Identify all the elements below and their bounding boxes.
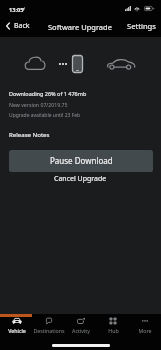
button[interactable]: Vehicle (0, 317, 33, 350)
button[interactable]: Destinations (33, 317, 65, 350)
staticText: Software Upgrade (48, 22, 112, 32)
button[interactable]: Back (2, 16, 36, 36)
staticText: Release Notes (9, 130, 50, 138)
button[interactable]: More (129, 317, 161, 350)
button[interactable]: Cancel Upgrade (0, 172, 161, 185)
staticText: Upgrade available until 23 Feb (9, 112, 81, 119)
button[interactable]: Release Notes (9, 130, 50, 138)
button[interactable]: Activity (65, 317, 97, 350)
staticText: More (138, 327, 152, 334)
staticText: Vehicle (8, 327, 26, 334)
staticText: 13:05 (9, 6, 24, 14)
staticText: Pause Download (50, 155, 113, 166)
staticText: Cancel Upgrade (54, 174, 107, 184)
button[interactable]: Settings (121, 16, 161, 36)
staticText: Activity (72, 327, 90, 334)
staticText: Destinations (33, 327, 65, 334)
staticText: Downloading 26% of 1 476mb (9, 90, 87, 97)
staticText: Hub (108, 327, 119, 334)
button[interactable]: Pause Download (9, 150, 153, 172)
staticText: New version 07/2019.75 (9, 101, 68, 108)
button[interactable]: Hub (97, 317, 129, 350)
staticText: Settings (127, 21, 156, 31)
staticText: Back (14, 21, 30, 31)
